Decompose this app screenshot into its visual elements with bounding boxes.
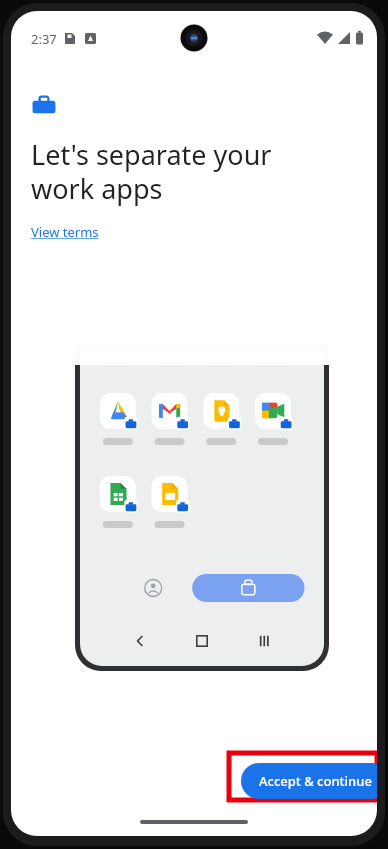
staticText: Let's separate your work apps — [31, 136, 272, 207]
button[interactable]: Accept & continue — [241, 763, 377, 799]
staticText: View terms — [31, 223, 99, 241]
staticText: 2:37 — [31, 30, 57, 48]
button[interactable]: View terms — [31, 221, 99, 243]
staticText: Accept & continue — [259, 772, 372, 790]
